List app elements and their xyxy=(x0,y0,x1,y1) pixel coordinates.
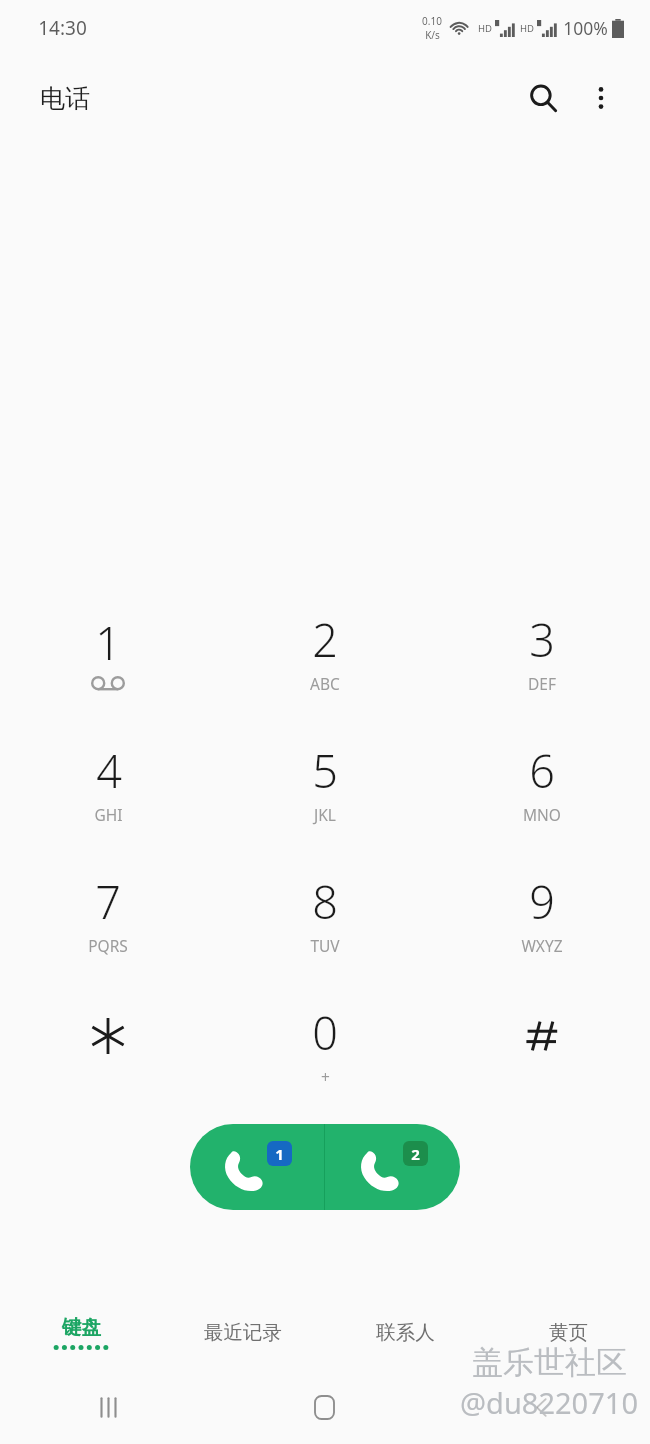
button[interactable]: Recents xyxy=(0,1370,216,1444)
staticText: JKL xyxy=(314,804,336,825)
button[interactable]: 6 xyxy=(433,717,650,848)
button[interactable]: 2 xyxy=(216,586,433,717)
staticText: MNO xyxy=(523,804,561,825)
staticText: 7 xyxy=(95,871,121,932)
staticText: @du8220710 xyxy=(460,1383,638,1422)
button[interactable]: 7 xyxy=(0,848,216,979)
staticText: 1 xyxy=(275,1144,284,1164)
staticText: ABC xyxy=(310,673,340,694)
staticText: PQRS xyxy=(88,935,128,956)
staticText: 3 xyxy=(529,609,555,670)
staticText: 0 xyxy=(312,1002,338,1063)
staticText: 联系人 xyxy=(376,1320,435,1345)
staticText: 盖乐世社区 xyxy=(472,1343,627,1382)
staticText: 电话 xyxy=(40,83,90,114)
staticText: 5 xyxy=(312,740,338,801)
button[interactable]: 4 xyxy=(0,717,216,848)
button[interactable]: 联系人 xyxy=(324,1294,487,1370)
staticText: 6 xyxy=(529,740,555,801)
button[interactable]: 键盘 xyxy=(0,1294,162,1370)
button[interactable]: 黄页 xyxy=(487,1294,650,1370)
button[interactable]: 1 xyxy=(0,586,216,717)
staticText: 2 xyxy=(411,1144,420,1164)
button[interactable]: Search xyxy=(514,69,572,127)
staticText: 1 xyxy=(95,612,121,673)
staticText: WXYZ xyxy=(521,935,563,956)
button[interactable] xyxy=(0,979,216,1110)
button[interactable]: 最近记录 xyxy=(162,1294,324,1370)
button[interactable]: 9 xyxy=(433,848,650,979)
button[interactable] xyxy=(433,979,650,1110)
staticText: K/s xyxy=(425,28,440,42)
staticText: 最近记录 xyxy=(204,1320,282,1345)
button[interactable]: More options xyxy=(572,69,630,127)
button[interactable]: 3 xyxy=(433,586,650,717)
button[interactable]: 8 xyxy=(216,848,433,979)
button[interactable]: 0 xyxy=(216,979,433,1110)
staticText: TUV xyxy=(310,935,340,956)
staticText: GHI xyxy=(94,804,123,825)
staticText: DEF xyxy=(528,673,556,694)
button[interactable]: Back xyxy=(433,1370,650,1444)
staticText: HD xyxy=(478,22,492,35)
staticText: 2 xyxy=(312,609,338,670)
staticText: 8 xyxy=(312,871,338,932)
staticText: 14:30 xyxy=(38,15,87,41)
button[interactable]: Home xyxy=(216,1370,433,1444)
staticText: 4 xyxy=(96,740,122,801)
staticText: 黄页 xyxy=(549,1320,588,1345)
button[interactable]: Call with SIM 1 xyxy=(190,1124,324,1210)
staticText: 9 xyxy=(529,871,555,932)
button[interactable]: 5 xyxy=(216,717,433,848)
staticText: 0.10 xyxy=(422,14,442,28)
staticText: 100% xyxy=(563,16,608,40)
staticText: + xyxy=(321,1066,330,1087)
staticText: HD xyxy=(520,22,534,35)
button[interactable]: Call with SIM 2 xyxy=(325,1124,460,1210)
staticText: 键盘 xyxy=(62,1315,101,1340)
